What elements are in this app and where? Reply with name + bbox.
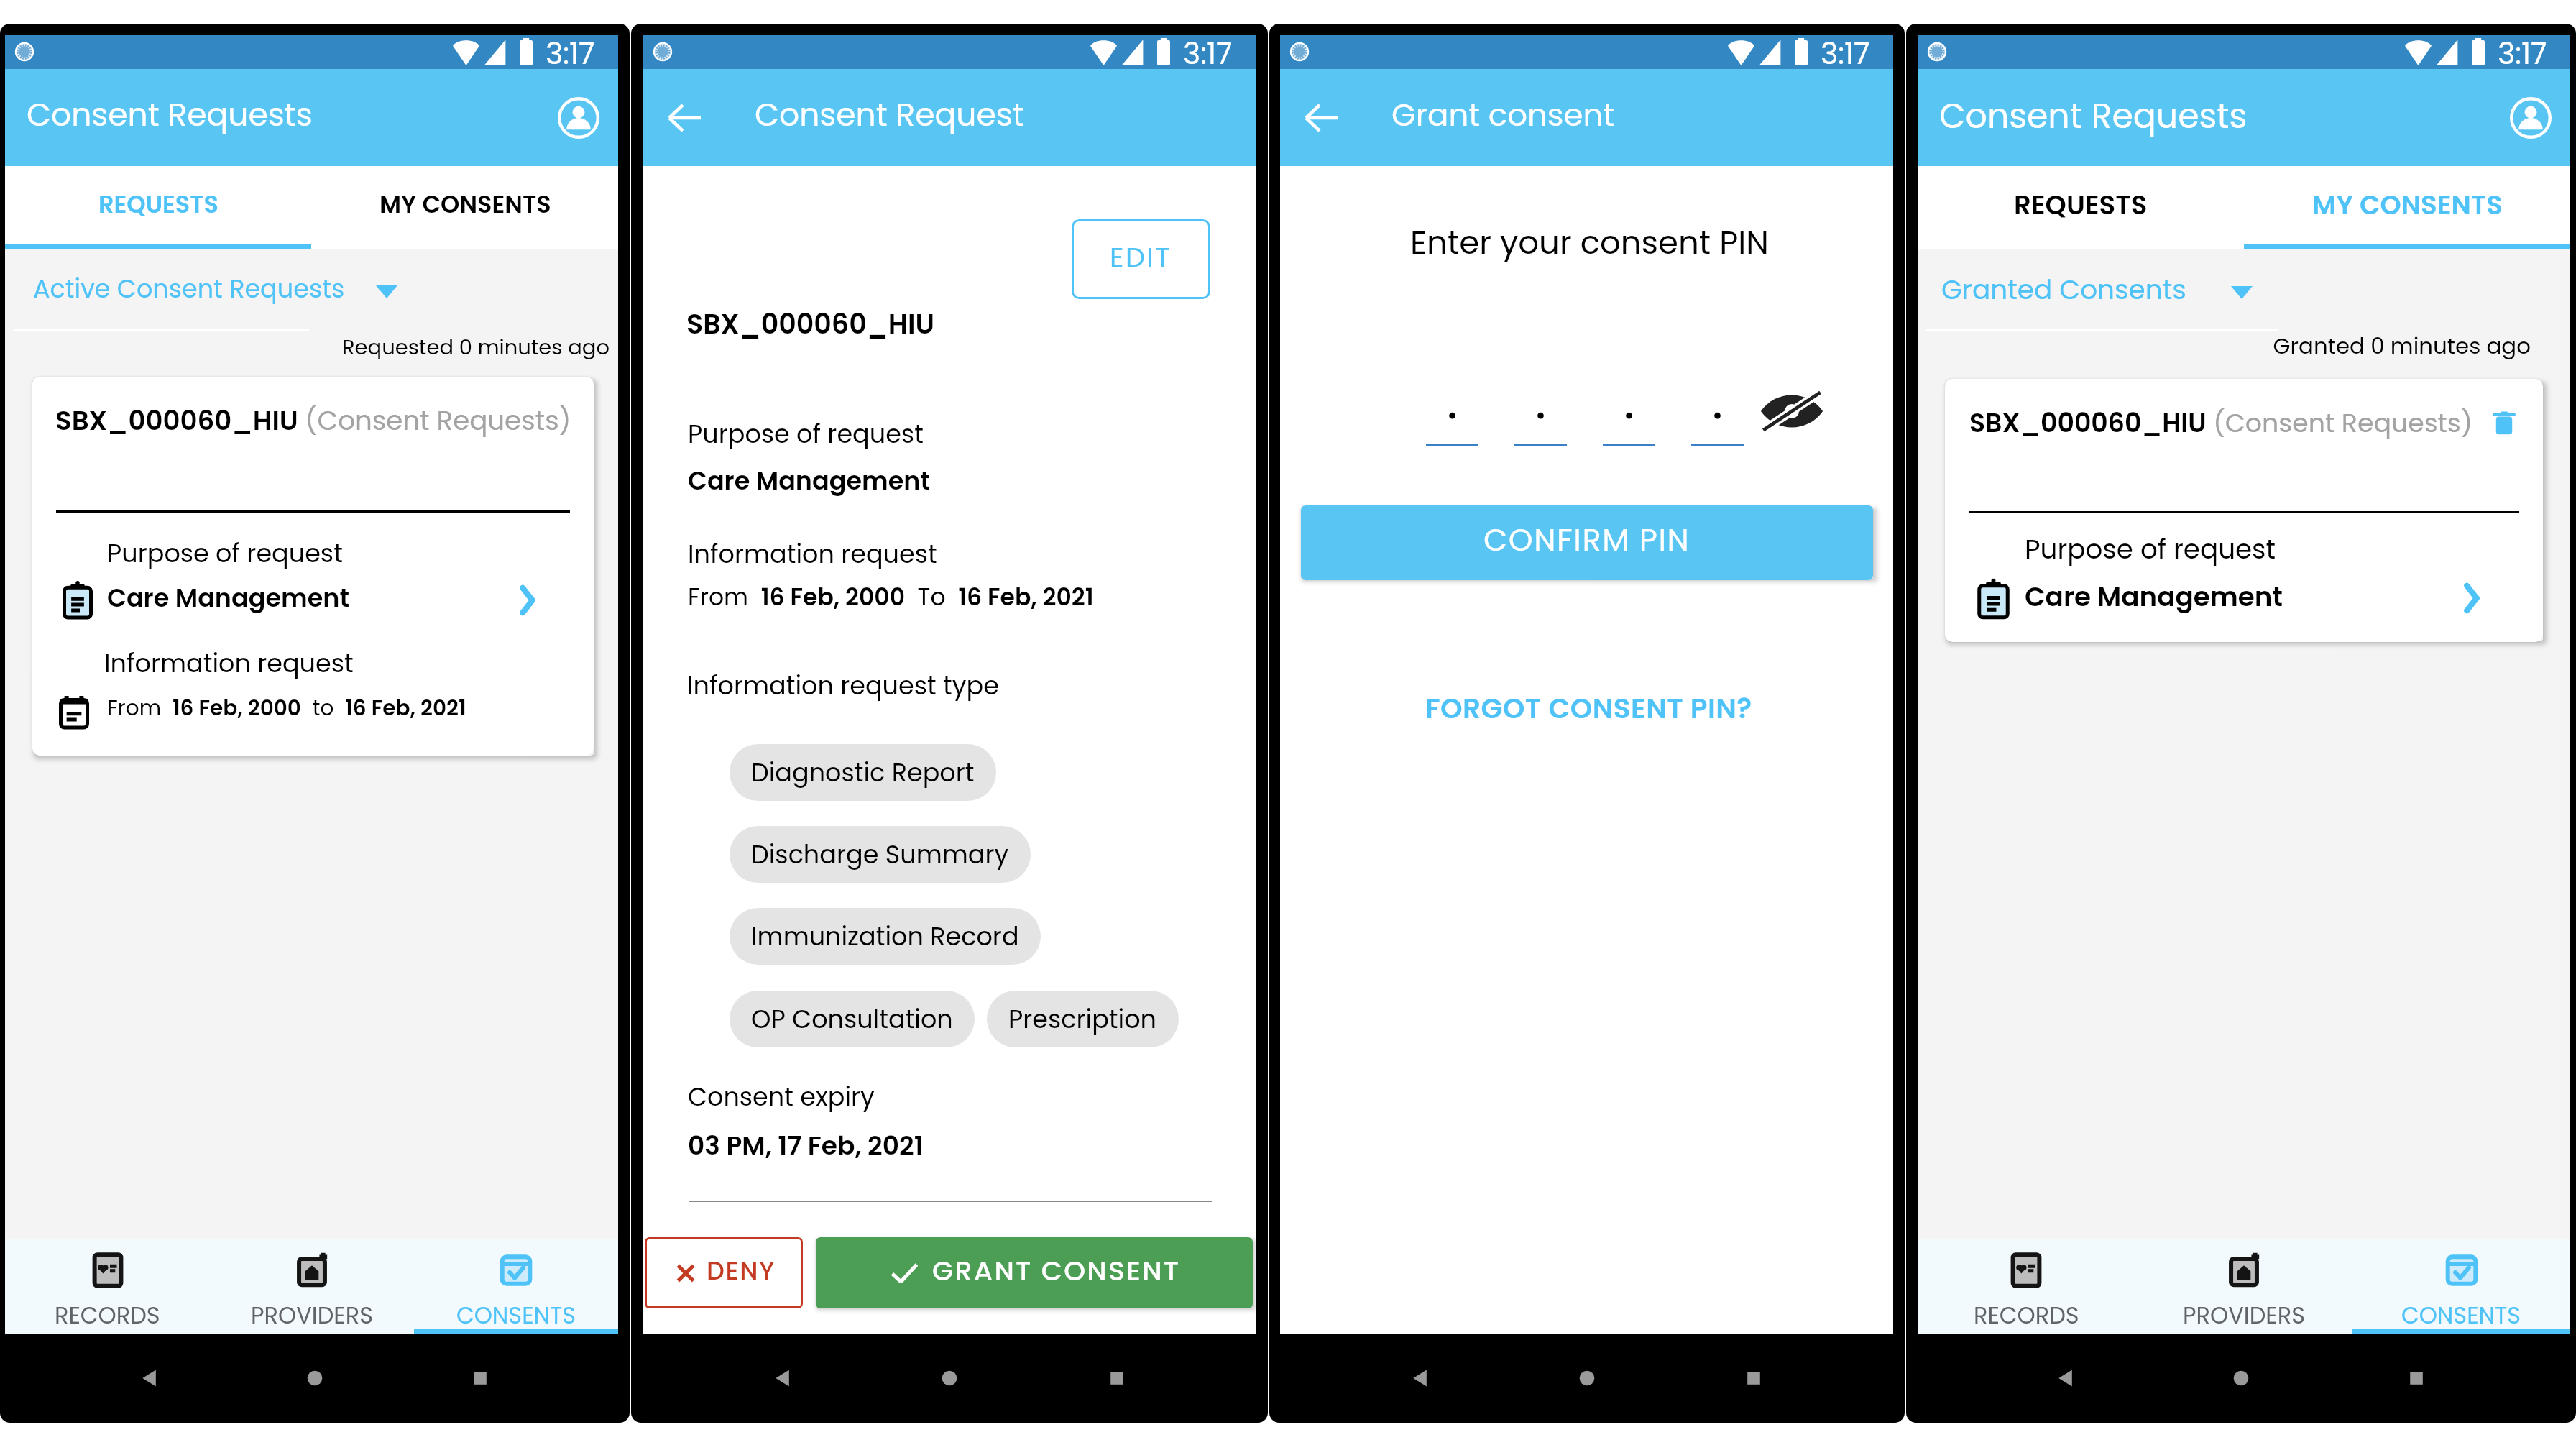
staticText: 03 PM, 17 Feb, 2021 (688, 1127, 924, 1163)
button[interactable]: RECORDS (5, 1239, 210, 1334)
button[interactable]: PROVIDERS (210, 1239, 414, 1334)
staticText: Purpose of request (688, 416, 924, 451)
button[interactable]: SBX_000060_HIU (Consent Requests) (32, 377, 594, 756)
staticText: MY CONSENTS (2312, 186, 2503, 224)
staticText: Consent Requests (1939, 92, 2248, 139)
staticText: Requested 0 minutes ago (5, 333, 609, 362)
button[interactable]: Delete consent (2484, 403, 2524, 444)
staticText: CONSENTS (456, 1299, 576, 1331)
staticText: SBX_000060_HIU (Consent Requests) (1969, 405, 2473, 441)
button[interactable]: Diagnostic Report (730, 744, 996, 801)
button[interactable]: Granted Consents (1941, 271, 2260, 308)
staticText: EDIT (1110, 238, 1172, 276)
button[interactable]: FORGOT CONSENT PIN? (1417, 682, 1761, 735)
button[interactable] (2244, 166, 2570, 249)
button[interactable]: OP Consultation (730, 991, 975, 1047)
button[interactable]: GRANT CONSENT (816, 1237, 1253, 1308)
button[interactable]: Active Consent Requests (33, 271, 405, 306)
staticText: DENY (707, 1253, 776, 1288)
staticText: Consent Request (755, 93, 1024, 137)
staticText: From 16 Feb, 2000 to 16 Feb, 2021 (107, 693, 466, 722)
staticText: OP Consultation (751, 1001, 953, 1037)
button[interactable]: DENY (645, 1237, 803, 1308)
staticText: MY CONSENTS (379, 188, 551, 221)
staticText: Diagnostic Report (751, 755, 975, 790)
button[interactable]: Discharge Summary (730, 826, 1031, 883)
staticText: Purpose of request (2025, 531, 2276, 568)
button[interactable]: Show PIN (1757, 385, 1826, 437)
button[interactable]: RECORDS (1918, 1239, 2135, 1334)
button[interactable]: Prescription (987, 991, 1179, 1047)
staticText: Granted 0 minutes ago (1918, 331, 2531, 362)
staticText: Grant consent (1391, 93, 1615, 137)
staticText: 3:17 (1183, 33, 1233, 68)
button[interactable]: Immunization Record (730, 908, 1041, 965)
staticText: 3:17 (546, 33, 595, 68)
staticText: PROVIDERS (2183, 1299, 2305, 1331)
staticText: Information request (104, 646, 354, 681)
button[interactable] (1918, 166, 2244, 249)
button[interactable]: SBX_000060_HIU (Consent Requests) (1945, 379, 2543, 642)
staticText: REQUESTS (98, 188, 218, 221)
staticText: Information request type (687, 668, 999, 703)
button[interactable]: Back (643, 69, 725, 166)
button[interactable]: PROVIDERS (2135, 1239, 2352, 1334)
staticText: CONSENTS (2401, 1299, 2521, 1331)
button[interactable]: Account (2491, 78, 2570, 157)
staticText: RECORDS (1974, 1299, 2079, 1331)
staticText: From 16 Feb, 2000 To 16 Feb, 2021 (688, 580, 1094, 613)
staticText: Discharge Summary (751, 837, 1009, 872)
staticText: 3:17 (2498, 33, 2547, 68)
staticText: CONFIRM PIN (1483, 518, 1690, 561)
staticText: Consent expiry (688, 1079, 875, 1114)
button[interactable]: CONFIRM PIN (1301, 505, 1873, 580)
button[interactable]: Account (539, 78, 618, 157)
staticText: Information request (688, 536, 937, 572)
staticText: 3:17 (1821, 33, 1870, 68)
staticText: Care Management (107, 580, 350, 615)
staticText: REQUESTS (2014, 186, 2148, 224)
staticText: Purpose of request (107, 536, 343, 571)
button[interactable]: Back (1280, 69, 1362, 166)
staticText: Prescription (1008, 1001, 1157, 1037)
button[interactable]: EDIT (1072, 219, 1210, 299)
button[interactable]: CONSENTS (2352, 1239, 2570, 1334)
staticText: Enter your consent PIN (1410, 220, 1769, 265)
staticText: SBX_000060_HIU (Consent Requests) (55, 402, 571, 439)
staticText: SBX_000060_HIU (686, 305, 935, 343)
staticText: Granted Consents (1941, 271, 2186, 308)
staticText: Care Management (688, 463, 931, 498)
staticText: Care Management (2025, 578, 2283, 615)
staticText: FORGOT CONSENT PIN? (1425, 689, 1752, 728)
staticText: Consent Requests (27, 93, 313, 137)
staticText: GRANT CONSENT (932, 1252, 1181, 1290)
staticText: RECORDS (55, 1299, 160, 1331)
staticText: PROVIDERS (251, 1299, 373, 1331)
staticText: Immunization Record (751, 919, 1019, 954)
button[interactable] (311, 166, 618, 249)
button[interactable]: CONSENTS (414, 1239, 618, 1334)
button[interactable] (5, 166, 311, 249)
staticText: Active Consent Requests (33, 271, 345, 306)
